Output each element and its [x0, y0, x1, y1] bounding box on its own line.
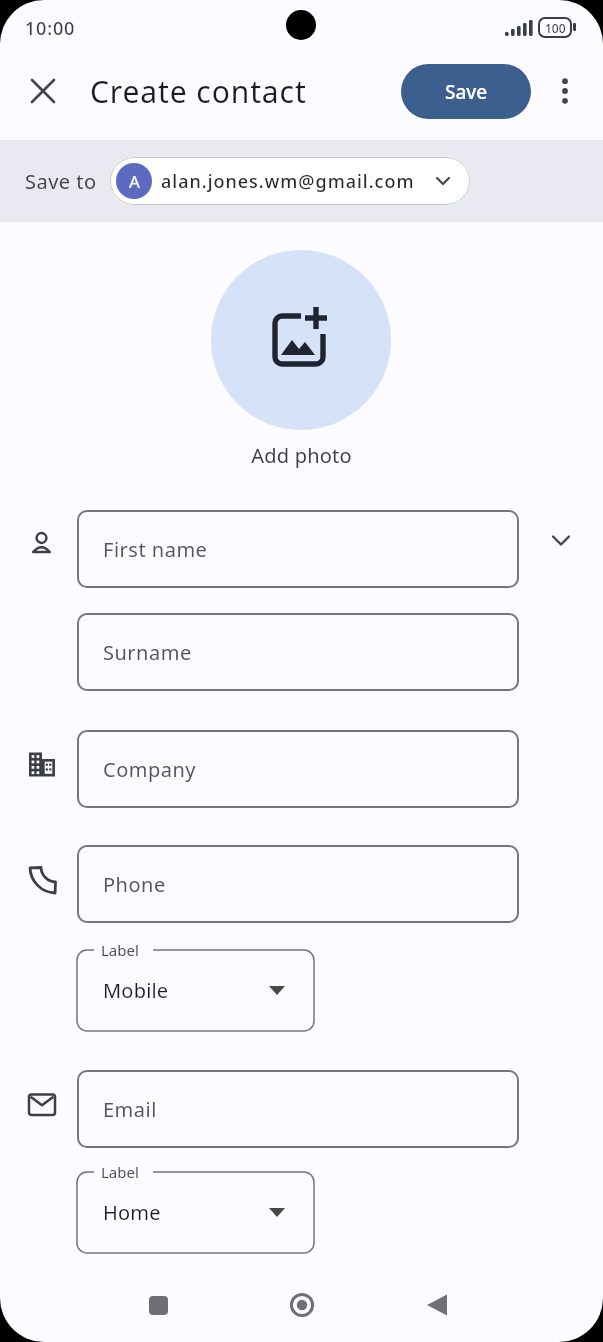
staticText: Phone [103, 871, 166, 898]
staticText: A [129, 170, 140, 193]
staticText: Company [103, 756, 197, 783]
button[interactable]: Company [77, 730, 519, 808]
staticText: Add photo [0, 442, 603, 469]
button[interactable]: Label [77, 1160, 314, 1253]
staticText: Surname [103, 639, 192, 666]
staticText: First name [103, 536, 208, 563]
staticText: Create contact [90, 71, 307, 112]
staticText: Home [103, 1199, 161, 1226]
button[interactable]: Save [401, 64, 531, 119]
button[interactable] [19, 67, 67, 115]
button[interactable]: Phone [77, 845, 519, 923]
button[interactable]: Email [77, 1070, 519, 1148]
staticText: Save to [25, 168, 97, 195]
button[interactable] [413, 1281, 461, 1329]
button[interactable] [278, 1281, 326, 1329]
button[interactable] [541, 67, 589, 115]
button[interactable]: Surname [77, 613, 519, 691]
button[interactable]: First name [77, 510, 519, 588]
staticText: 100 [545, 20, 566, 36]
button[interactable]: A [110, 157, 470, 205]
button[interactable] [134, 1281, 182, 1329]
staticText: alan.jones.wm@gmail.com [161, 169, 415, 194]
staticText: Save [445, 79, 488, 105]
button[interactable] [537, 516, 585, 564]
staticText: Mobile [103, 977, 169, 1004]
staticText: Label [101, 940, 139, 960]
staticText: 10:00 [25, 16, 76, 41]
staticText: Email [103, 1096, 157, 1123]
button[interactable]: Label [77, 938, 314, 1031]
button[interactable] [211, 250, 391, 430]
staticText: Label [101, 1162, 139, 1182]
